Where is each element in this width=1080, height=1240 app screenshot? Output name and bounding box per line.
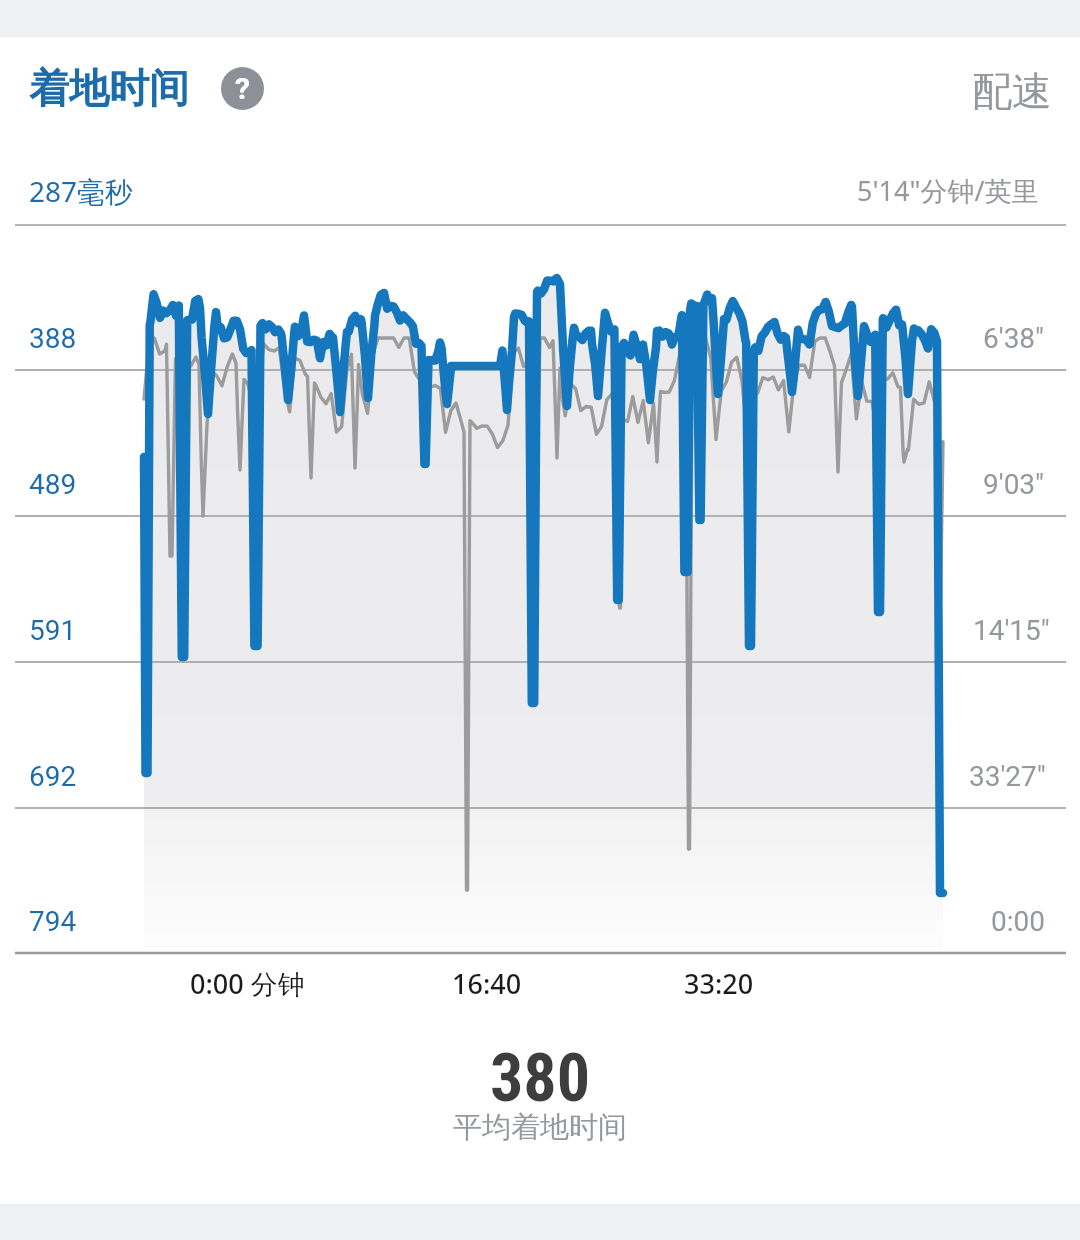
staticText: 0:00 分钟 (190, 965, 305, 1002)
staticText: 14'15" (973, 614, 1050, 647)
staticText: 配速 (972, 66, 1052, 116)
staticText: 591 (29, 614, 77, 647)
staticText: 6'38" (983, 322, 1045, 355)
staticText: 着地时间 (29, 63, 189, 113)
staticText: 287毫秒 (29, 172, 134, 210)
staticText: ? (235, 71, 250, 106)
staticText: 33'27" (969, 760, 1046, 793)
staticText: 5'14"分钟/英里 (857, 172, 1039, 209)
staticText: 0:00 (991, 905, 1045, 938)
staticText: 33:20 (684, 965, 754, 1002)
staticText: 16:40 (452, 965, 522, 1002)
button[interactable]: 着地时间 (29, 63, 189, 113)
staticText: 380 (490, 1040, 591, 1117)
staticText: 794 (29, 905, 77, 938)
staticText: 平均着地时间 (453, 1109, 627, 1146)
staticText: 692 (29, 760, 77, 793)
staticText: 388 (29, 322, 77, 355)
button[interactable]: Help, what is ground contact time (221, 67, 264, 110)
staticText: 489 (29, 468, 77, 501)
staticText: 9'03" (983, 468, 1045, 501)
button[interactable]: 配速 (972, 66, 1052, 116)
